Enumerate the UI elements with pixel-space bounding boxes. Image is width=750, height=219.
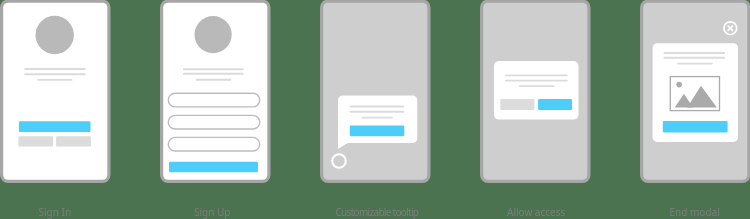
button[interactable] <box>0 0 750 219</box>
